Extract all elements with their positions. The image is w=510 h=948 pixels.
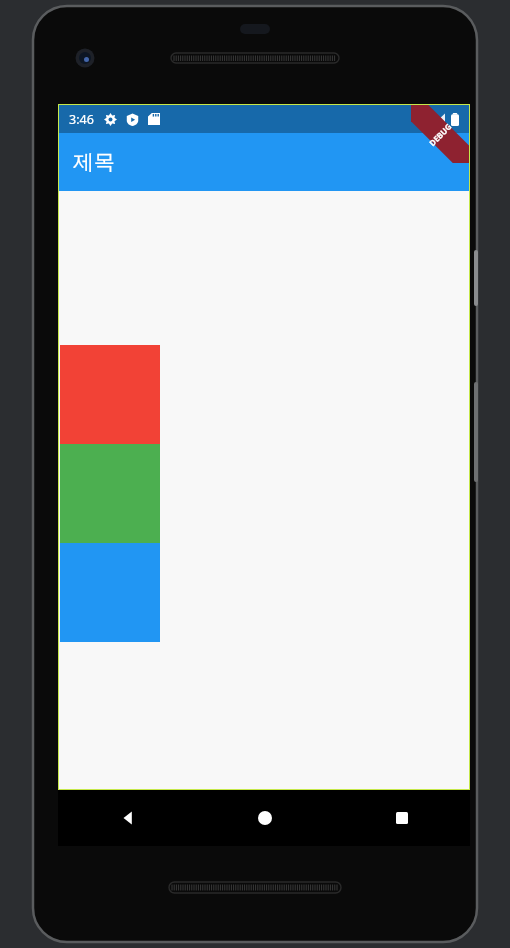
staticText: DEBUG [426, 121, 454, 148]
staticText: 제목 [73, 149, 115, 175]
button[interactable]: Recent apps [333, 790, 470, 846]
button[interactable]: Back [58, 790, 196, 846]
button[interactable]: 제목 [59, 133, 469, 191]
button[interactable]: Home [196, 790, 333, 846]
staticText: 3:46 [69, 111, 94, 128]
